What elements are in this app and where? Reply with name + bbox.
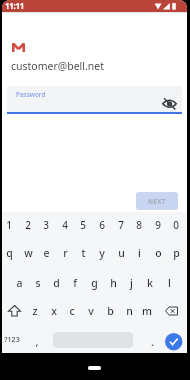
staticText: e — [43, 246, 50, 260]
button[interactable]: h — [104, 275, 122, 291]
button[interactable]: m — [138, 303, 156, 319]
staticText: c — [69, 304, 75, 318]
staticText: l — [168, 276, 171, 290]
button[interactable]: 0 — [167, 217, 185, 233]
button[interactable]: q — [2, 245, 18, 261]
button[interactable] — [162, 95, 178, 111]
staticText: y — [99, 246, 105, 260]
staticText: g — [91, 276, 98, 290]
staticText: ?123 — [4, 334, 20, 344]
button[interactable]: i — [130, 245, 148, 261]
button[interactable]: r — [56, 245, 74, 261]
button[interactable]: w — [19, 245, 37, 261]
button[interactable]: o — [149, 245, 167, 261]
staticText: f — [73, 276, 77, 290]
button[interactable]: g — [85, 275, 103, 291]
staticText: 2 — [25, 218, 31, 232]
button[interactable]: e — [37, 245, 55, 261]
staticText: z — [32, 304, 38, 318]
staticText: 5 — [80, 218, 86, 232]
staticText: d — [53, 276, 60, 290]
button[interactable]: z — [26, 303, 44, 319]
staticText: 7 — [118, 218, 124, 232]
button[interactable]: 7 — [112, 217, 130, 233]
button[interactable]: 8 — [130, 217, 148, 233]
button[interactable]: 9 — [149, 217, 167, 233]
button[interactable]: 3 — [37, 217, 55, 233]
button[interactable]: 5 — [74, 217, 92, 233]
staticText: t — [81, 246, 86, 260]
staticText: v — [88, 304, 94, 318]
button[interactable]: Password — [7, 86, 182, 114]
button[interactable]: p — [167, 245, 185, 261]
staticText: 11:11 — [5, 0, 25, 11]
button[interactable]: l — [160, 275, 178, 291]
button[interactable]: t — [74, 245, 92, 261]
staticText: k — [147, 276, 153, 290]
staticText: a — [16, 276, 23, 290]
staticText: q — [6, 246, 13, 260]
button[interactable]: c — [63, 303, 81, 319]
staticText: 3 — [43, 218, 49, 232]
button[interactable]: 4 — [56, 217, 74, 233]
staticText: p — [173, 246, 180, 260]
staticText: o — [155, 246, 162, 260]
button[interactable] — [6, 304, 23, 318]
button[interactable]: v — [82, 303, 100, 319]
button[interactable]: 2 — [19, 217, 37, 233]
button[interactable]: s — [29, 275, 47, 291]
staticText: 9 — [155, 218, 161, 232]
staticText: r — [63, 246, 68, 260]
staticText: w — [24, 246, 33, 260]
button[interactable]: ?123 — [2, 331, 24, 347]
button[interactable]: f — [66, 275, 84, 291]
button[interactable]: n — [120, 303, 138, 319]
staticText: h — [110, 276, 117, 290]
button[interactable]: u — [112, 245, 130, 261]
staticText: b — [107, 304, 114, 318]
button[interactable]: , — [32, 333, 42, 349]
button[interactable]: b — [101, 303, 119, 319]
button[interactable]: y — [93, 245, 111, 261]
staticText: j — [130, 276, 133, 290]
staticText: customer@bell.net — [11, 59, 105, 73]
staticText: NEXT — [148, 197, 166, 206]
button[interactable]: 6 — [93, 217, 111, 233]
staticText: i — [138, 246, 141, 260]
staticText: Password — [16, 90, 46, 99]
staticText: s — [35, 276, 41, 290]
staticText: x — [51, 304, 57, 318]
staticText: 8 — [136, 218, 142, 232]
button[interactable]: k — [141, 275, 159, 291]
staticText: 0 — [173, 218, 179, 232]
staticText: , — [35, 334, 39, 349]
button[interactable] — [164, 304, 180, 318]
button[interactable] — [88, 366, 101, 370]
button[interactable]: 1 — [2, 217, 18, 233]
staticText: 6 — [99, 218, 105, 232]
staticText: u — [118, 246, 125, 260]
button[interactable]: . — [147, 333, 157, 349]
button[interactable] — [165, 333, 183, 351]
button[interactable]: NEXT — [136, 192, 178, 210]
staticText: m — [142, 304, 152, 318]
staticText: n — [126, 304, 133, 318]
button[interactable]: a — [10, 275, 28, 291]
staticText: 4 — [62, 218, 68, 232]
button[interactable]: j — [122, 275, 140, 291]
button[interactable]: x — [45, 303, 63, 319]
button[interactable]: d — [47, 275, 65, 291]
staticText: 1 — [6, 218, 12, 232]
staticText: . — [151, 334, 154, 349]
